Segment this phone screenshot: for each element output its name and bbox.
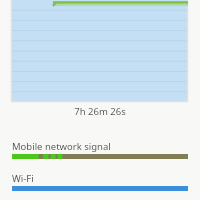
button[interactable]: Battery level history chart: [11, 0, 188, 102]
staticText: 7h 26m 26s: [0, 105, 200, 118]
button[interactable]: Mobile network signal: [0, 140, 200, 159]
button[interactable]: Wi-Fi: [0, 172, 200, 191]
staticText: Mobile network signal: [12, 140, 111, 153]
staticText: Wi-Fi: [12, 172, 34, 185]
